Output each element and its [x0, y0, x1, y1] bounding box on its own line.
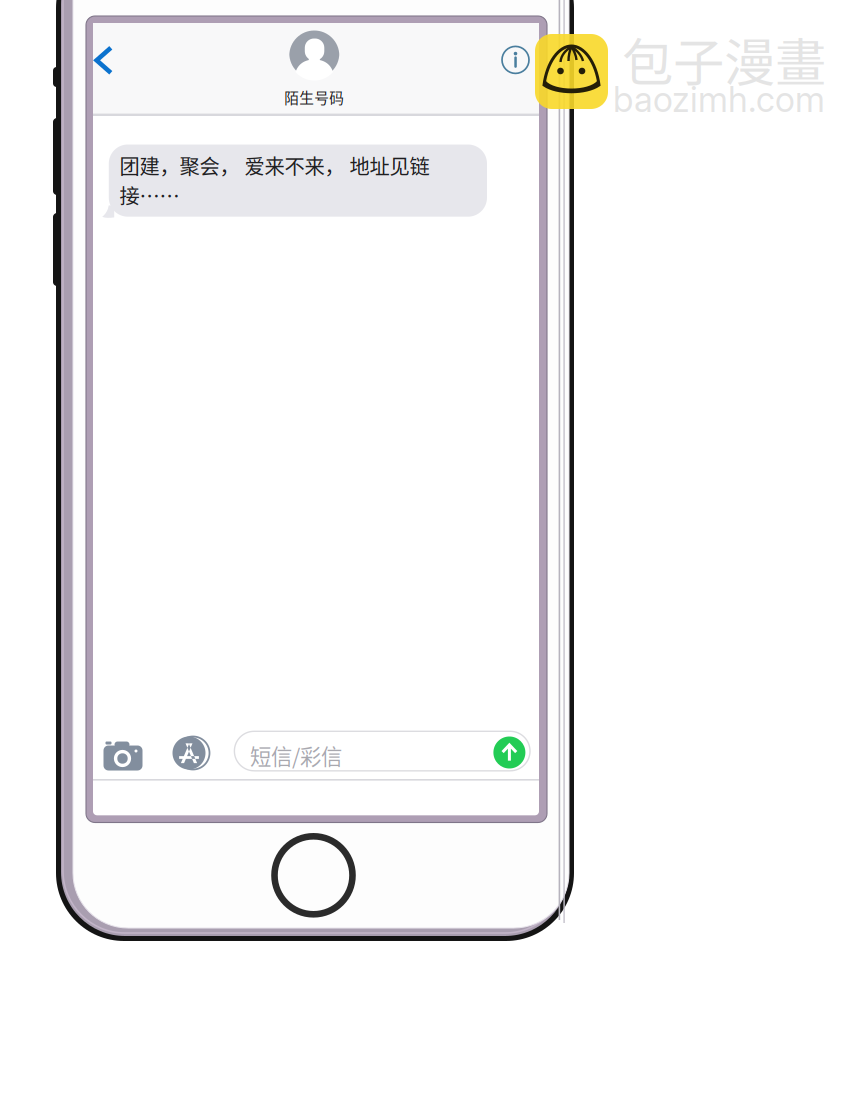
button[interactable]: Send [493, 736, 525, 768]
button[interactable]: Details [493, 38, 537, 82]
staticText: baozimh.com [613, 78, 825, 120]
button[interactable]: Apps [168, 734, 210, 772]
button[interactable]: Back [78, 34, 128, 86]
button[interactable]: Camera [100, 733, 146, 775]
staticText: 包子漫畫 [622, 22, 826, 96]
staticText: 短信/彩信 [250, 740, 342, 771]
staticText: 陌生号码 [284, 86, 344, 108]
button[interactable]: 陌生号码 [239, 30, 389, 108]
staticText: 团建，聚会， 爱来不来， 地址见链接…… [120, 151, 430, 209]
